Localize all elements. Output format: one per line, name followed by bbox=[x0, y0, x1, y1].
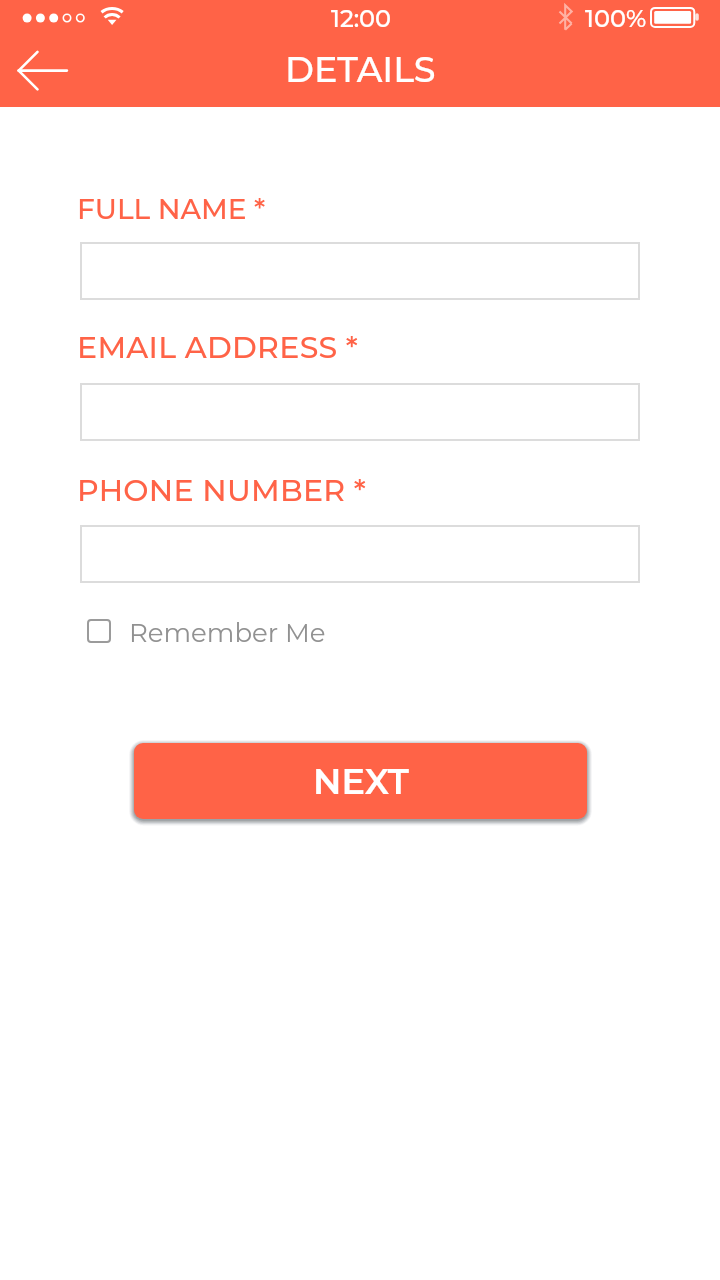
staticText: Remember Me bbox=[129, 617, 326, 649]
staticText: 12:00 bbox=[331, 4, 392, 33]
button[interactable]: NEXT bbox=[134, 743, 587, 819]
button[interactable]: EMAIL ADDRESS * bbox=[80, 383, 640, 441]
staticText: FULL NAME * bbox=[77, 192, 266, 226]
other: Bluetooth bbox=[556, 2, 576, 32]
staticText: NEXT bbox=[313, 760, 409, 803]
button[interactable]: Remember Me bbox=[87, 610, 326, 652]
button[interactable]: Back bbox=[14, 48, 72, 92]
other: Wi-Fi bbox=[98, 2, 126, 30]
staticText: EMAIL ADDRESS * bbox=[77, 329, 359, 366]
button[interactable]: FULL NAME * bbox=[80, 242, 640, 300]
other: Signal strength bbox=[18, 8, 94, 28]
staticText: DETAILS bbox=[285, 48, 436, 91]
other: Battery full bbox=[650, 7, 700, 29]
button[interactable]: PHONE NUMBER * bbox=[80, 525, 640, 583]
staticText: 100% bbox=[585, 4, 647, 33]
staticText: PHONE NUMBER * bbox=[77, 472, 367, 509]
